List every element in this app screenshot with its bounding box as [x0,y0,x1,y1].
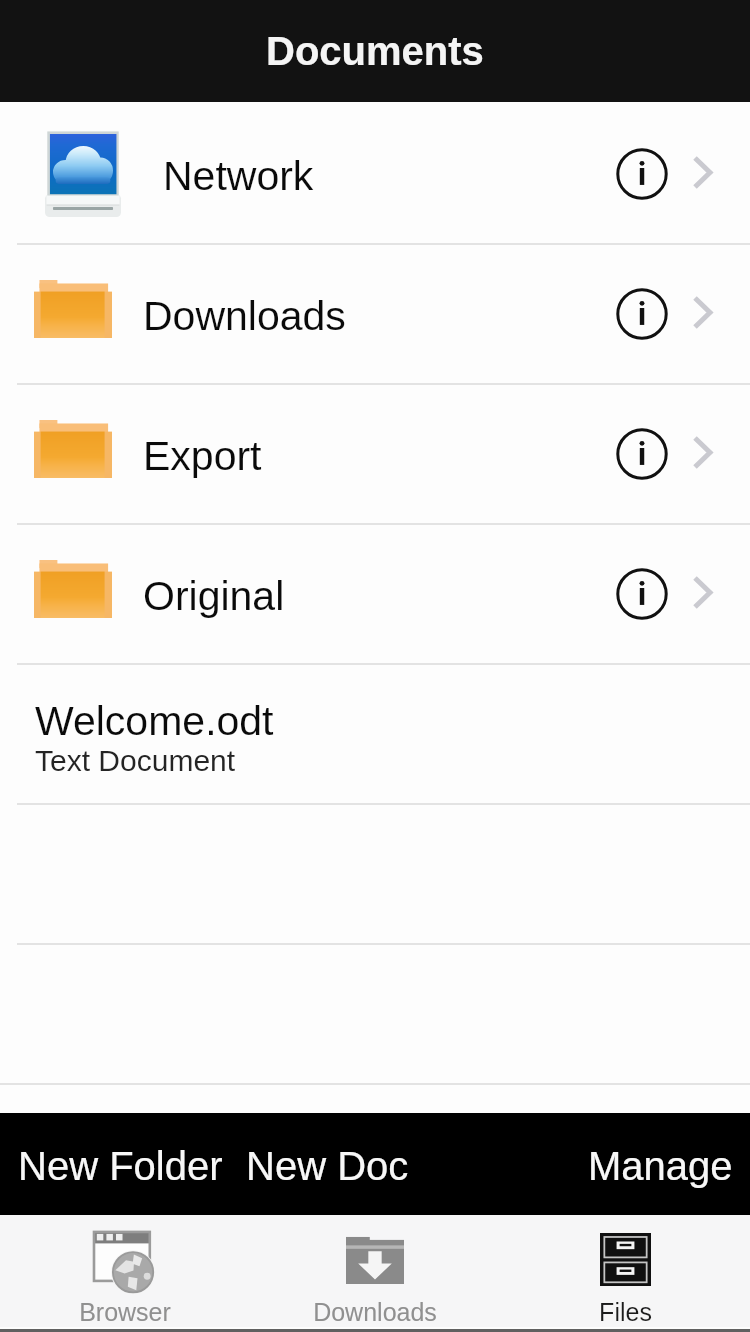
staticText: Export [143,433,262,479]
button[interactable]: Files [500,1215,750,1327]
button[interactable]: New Doc [246,1113,409,1215]
staticText: New Doc [246,1144,409,1189]
staticText: Original [143,573,285,619]
staticText: Network [163,153,314,199]
staticText: Browser [79,1298,171,1326]
button[interactable]: New Folder [18,1113,223,1215]
button[interactable]: Downloads [250,1215,500,1327]
button[interactable]: Downloads [0,242,750,382]
button[interactable]: Original [0,522,750,662]
button[interactable]: Open [679,149,725,195]
button[interactable]: Open [679,569,725,615]
button[interactable]: Network [0,102,750,242]
staticText: Text Document [35,744,236,778]
button[interactable]: Info [604,416,680,492]
button[interactable]: Info [604,556,680,632]
button[interactable]: Export [0,382,750,522]
button[interactable]: Welcome.odt [0,662,750,802]
staticText: Downloads [143,293,346,339]
button[interactable]: Manage [588,1113,733,1215]
button[interactable]: Info [604,136,680,212]
button[interactable]: Open [679,289,725,335]
staticText: Downloads [313,1298,437,1326]
staticText: Manage [588,1144,733,1189]
button[interactable]: Browser [0,1215,250,1327]
staticText: Documents [266,29,484,74]
button[interactable]: Open [679,429,725,475]
button[interactable]: Info [604,276,680,352]
staticText: Welcome.odt [35,698,274,744]
staticText: Files [599,1298,652,1326]
staticText: New Folder [18,1144,223,1189]
